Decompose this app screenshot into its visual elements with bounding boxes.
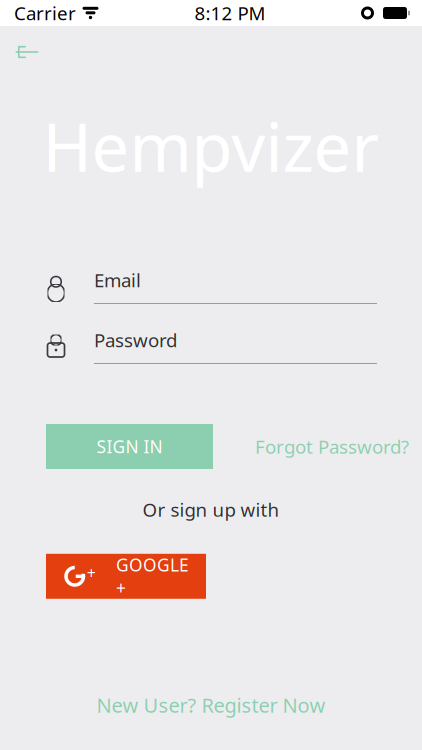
staticText: SIGN IN (96, 435, 162, 458)
button[interactable]: New User? Register Now (0, 684, 422, 726)
button[interactable]: SIGN IN (46, 424, 213, 469)
staticText: Or sign up with (142, 497, 279, 522)
staticText: Forgot Password? (255, 434, 409, 459)
staticText: Email (94, 268, 141, 292)
button[interactable]: + (46, 554, 206, 599)
staticText: Password (94, 328, 177, 352)
staticText: GOOGLE+ (116, 553, 189, 599)
button[interactable]: Back (6, 34, 52, 70)
staticText: + (87, 562, 96, 583)
button[interactable]: Forgot Password? (255, 424, 409, 469)
staticText: Hempvizer (42, 102, 379, 190)
staticText: New User? Register Now (96, 692, 325, 718)
staticText: Carrier (14, 1, 76, 25)
staticText: 8:12 PM (194, 1, 265, 25)
